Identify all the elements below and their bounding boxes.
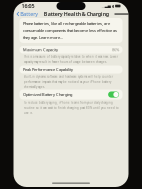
button[interactable]: Battery <box>13 9 38 19</box>
staticText: To reduce battery aging, iPhone learns f… <box>24 101 119 115</box>
staticText: 86% <box>112 47 119 52</box>
staticText: Phone batteries, like all rechargeable b… <box>23 21 117 40</box>
staticText: Maximum Capacity <box>23 47 58 52</box>
staticText: Built-in dynamic software and hardware s… <box>24 75 113 89</box>
button[interactable]: Maximum Capacity <box>19 46 122 53</box>
staticText: Peak Performance Capability <box>23 67 73 72</box>
staticText: Optimized Battery Charging <box>23 92 72 97</box>
staticText: Battery <box>20 10 38 18</box>
button[interactable]: Optimized Battery Charging <box>19 89 122 99</box>
staticText: 16:05 <box>21 2 34 10</box>
staticText: ▁▃▅ <box>102 4 111 8</box>
staticText: Battery Health & Charging <box>44 10 109 18</box>
staticText: ◖ <box>112 4 114 8</box>
staticText: This is a measure of battery capacity re… <box>24 55 118 64</box>
